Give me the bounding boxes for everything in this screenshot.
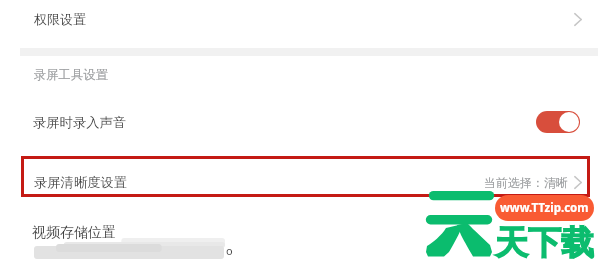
- button[interactable]: 权限设置: [0, 0, 598, 43]
- button[interactable]: 录屏时录入声音: [0, 96, 598, 148]
- staticText: 视频存储位置: [32, 224, 116, 242]
- button[interactable]: 视频存储位置: [0, 212, 598, 264]
- staticText: 录屏清晰度设置: [34, 174, 128, 191]
- button[interactable]: 录屏清晰度设置: [0, 157, 598, 207]
- staticText: 权限设置: [34, 11, 86, 27]
- button[interactable]: Record audio toggle, on: [536, 111, 580, 133]
- staticText: 录屏时录入声音: [33, 114, 127, 131]
- staticText: www.TTzip.com: [500, 200, 589, 216]
- staticText: 天下载: [495, 222, 594, 264]
- staticText: 当前选择：清晰: [484, 175, 568, 190]
- staticText: 录屏工具设置: [34, 67, 108, 82]
- staticText: o: [226, 243, 233, 258]
